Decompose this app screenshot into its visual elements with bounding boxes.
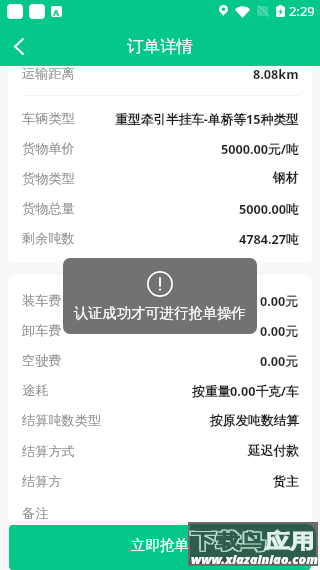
staticText: 下载鸟 xyxy=(192,528,266,553)
staticText: 按原发吨数结算 xyxy=(210,413,299,429)
staticText: 订单详情 xyxy=(127,36,193,57)
staticText: 5000.00元/吨 xyxy=(221,140,299,157)
staticText: 按重量0.00千克/车 xyxy=(192,382,299,399)
staticText: 下载鸟 xyxy=(191,529,265,554)
button[interactable]: Back xyxy=(0,24,40,64)
staticText: 结算方 xyxy=(22,473,62,490)
staticText: 重型牵引半挂车-单桥等15种类型 xyxy=(115,110,299,127)
staticText: 认证成功才可进行抢单操作 xyxy=(74,304,246,322)
staticText: 2:29 xyxy=(289,2,315,20)
staticText: 途耗 xyxy=(22,382,49,399)
staticText: 4784.27吨 xyxy=(239,230,299,247)
staticText: 车辆类型 xyxy=(22,110,75,127)
staticText: 应用 xyxy=(265,529,314,554)
staticText: 钢材 xyxy=(273,170,299,186)
staticText: 装车费 xyxy=(22,292,62,309)
staticText: 货物单价 xyxy=(22,140,75,157)
staticText: 立即抢单 xyxy=(131,536,189,554)
staticText: 下载鸟 xyxy=(192,530,266,555)
staticText: 结算方式 xyxy=(22,443,75,460)
staticText: 空驶费 xyxy=(22,352,62,369)
staticText: A xyxy=(53,6,60,17)
staticText: 运输距离 xyxy=(22,66,75,82)
staticText: www.xiazainiao.com xyxy=(191,551,318,567)
staticText: 下载鸟 xyxy=(190,528,264,553)
staticText: 货物类型 xyxy=(22,170,75,187)
staticText: 结算吨数类型 xyxy=(22,412,102,429)
staticText: 备注 xyxy=(22,505,49,522)
staticText: 货物总量 xyxy=(22,200,75,217)
staticText: 8.08km xyxy=(253,66,299,82)
staticText: 0.00元 xyxy=(260,322,299,339)
staticText: 0.00元 xyxy=(260,292,299,309)
staticText: 延迟付款 xyxy=(248,443,299,459)
staticText: 5000.00吨 xyxy=(239,200,299,217)
staticText: 0.00元 xyxy=(260,352,299,369)
button[interactable]: 立即抢单 xyxy=(9,525,311,570)
staticText: 剩余吨数 xyxy=(22,230,75,247)
staticText: 下载鸟 xyxy=(190,530,264,555)
staticText: 卸车费 xyxy=(22,322,62,339)
staticText: 货主 xyxy=(273,474,299,490)
